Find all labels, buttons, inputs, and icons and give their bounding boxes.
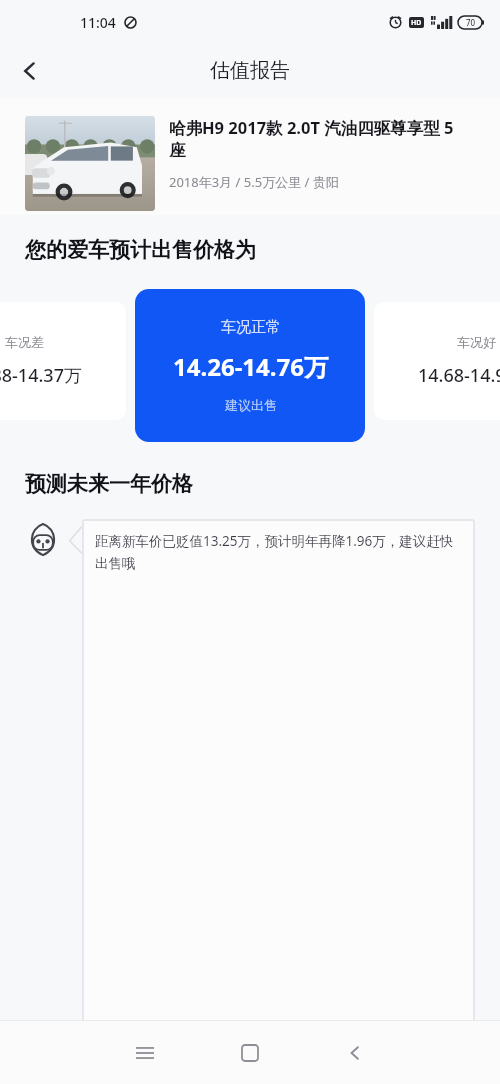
staticText: 车况正常 bbox=[221, 318, 281, 337]
staticText: HD bbox=[411, 18, 422, 28]
button[interactable]: Back bbox=[8, 49, 52, 93]
button[interactable]: 车况差 bbox=[0, 302, 126, 420]
button[interactable]: Recent apps bbox=[123, 1031, 167, 1075]
staticText: 2018年3月 / 5.5万公里 / 贵阳 bbox=[169, 173, 339, 191]
staticText: 距离新车价已贬值13.25万，预计明年再降1.96万，建议赶快出售哦 bbox=[95, 532, 462, 572]
staticText: 预测未来一年价格 bbox=[25, 471, 193, 497]
staticText: 13.88-14.37万 bbox=[0, 363, 82, 388]
button[interactable]: Back bbox=[333, 1031, 377, 1075]
button[interactable]: Home bbox=[228, 1031, 272, 1075]
staticText: 估值报告 bbox=[210, 58, 290, 83]
staticText: 建议出售 bbox=[225, 397, 277, 413]
staticText: 车况好 bbox=[457, 334, 496, 350]
staticText: 70 bbox=[466, 17, 476, 28]
staticText: 14.68-14.97万 bbox=[418, 363, 500, 388]
button[interactable]: 车况好 bbox=[374, 302, 500, 420]
staticText: 您的爱车预计出售价格为 bbox=[25, 237, 256, 263]
button[interactable]: 车况正常 bbox=[135, 289, 365, 442]
button[interactable]: 哈弗H9 2017款 2.0T 汽油四驱尊享型 5座 bbox=[0, 98, 500, 215]
staticText: 车况差 bbox=[5, 334, 44, 350]
staticText: 哈弗H9 2017款 2.0T 汽油四驱尊享型 5座 bbox=[169, 116, 469, 161]
staticText: 11:04 bbox=[80, 13, 116, 32]
staticText: 14.26-14.76万 bbox=[173, 350, 328, 383]
